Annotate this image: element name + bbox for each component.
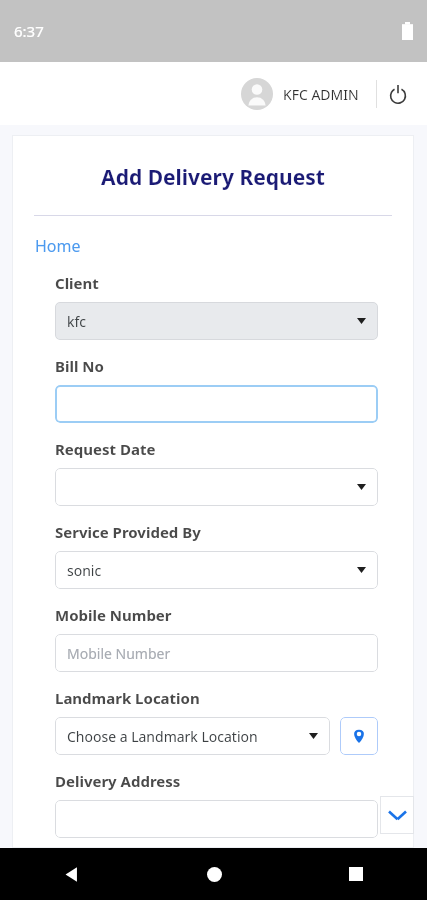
staticText: Mobile Number <box>55 605 172 625</box>
staticText: Add Delivery Request <box>12 163 414 192</box>
button[interactable]: Scroll down <box>380 796 414 834</box>
staticText: sonic <box>67 561 357 580</box>
staticText: Choose a Landmark Location <box>67 727 309 746</box>
staticText: Landmark Location <box>55 688 200 708</box>
button[interactable]: Choose a Landmark Location <box>55 717 330 755</box>
staticText: Mobile Number <box>67 644 171 663</box>
button[interactable]: Mobile Number <box>55 634 378 672</box>
staticText: Delivery Address <box>55 771 181 791</box>
staticText: kfc <box>67 312 357 331</box>
staticText: Request Date <box>55 439 156 459</box>
button[interactable]: KFC ADMIN <box>237 78 363 110</box>
button[interactable]: Back <box>0 848 143 900</box>
staticText: Service Provided By <box>55 522 201 542</box>
button[interactable] <box>55 385 378 423</box>
staticText: 6:37 <box>14 21 44 41</box>
button[interactable] <box>55 800 378 838</box>
button[interactable]: Home <box>35 235 81 257</box>
button[interactable] <box>55 468 378 506</box>
button[interactable]: Logout <box>377 73 419 115</box>
button[interactable]: Recent apps <box>285 848 427 900</box>
button[interactable]: sonic <box>55 551 378 589</box>
staticText: Client <box>55 273 99 293</box>
button[interactable]: Home <box>143 848 285 900</box>
button[interactable]: kfc <box>55 302 378 340</box>
staticText: KFC ADMIN <box>283 85 359 104</box>
button[interactable]: Pick location on map <box>340 717 378 755</box>
staticText: Bill No <box>55 356 104 376</box>
